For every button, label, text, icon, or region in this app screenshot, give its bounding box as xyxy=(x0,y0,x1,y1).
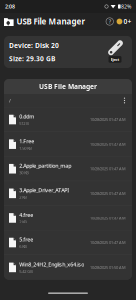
button[interactable]: 3.Apple_Driver_ATAPI xyxy=(4,181,132,206)
staticText: 4.free xyxy=(19,211,33,218)
staticText: 512 B xyxy=(19,121,29,126)
staticText: 2 KB xyxy=(19,195,27,200)
staticText: 10/28/2025 01:47 AM xyxy=(90,166,126,171)
button[interactable]: 1.Free xyxy=(4,132,132,157)
staticText: 10/28/2025 01:47 AM xyxy=(90,240,126,245)
staticText: 2:08 xyxy=(5,3,15,10)
staticText: 0.ddm xyxy=(19,113,34,120)
staticText: 2 KB xyxy=(19,219,27,224)
staticText: 2.Apple_partition_map xyxy=(19,162,71,169)
staticText: 10/28/2025 01:47 AM xyxy=(90,117,126,122)
button[interactable]: 4.free xyxy=(4,206,132,230)
staticText: 10/28/2025 01:50 AM xyxy=(90,265,126,270)
staticText: / xyxy=(9,97,11,104)
staticText: 0+ xyxy=(124,17,132,26)
staticText: 5.free xyxy=(19,236,33,243)
staticText: Eject xyxy=(110,57,119,62)
staticText: Device: Disk 20 xyxy=(9,41,59,50)
staticText: 5.42 GB xyxy=(19,269,33,274)
staticText: Size: 29.30 GB xyxy=(9,54,55,63)
staticText: 10/28/2025 01:47 AM xyxy=(90,215,126,221)
staticText: 10/28/2025 01:47 AM xyxy=(90,191,126,196)
button[interactable]: Eject xyxy=(102,41,128,63)
button[interactable]: 0.ddm xyxy=(4,107,132,132)
staticText: 1.50 KB xyxy=(19,145,32,151)
staticText: 82% xyxy=(121,3,131,10)
staticText: 1.Free xyxy=(19,138,34,145)
staticText: USB File Manager xyxy=(39,82,97,91)
button[interactable]: Coins xyxy=(115,14,133,28)
button[interactable]: 2.Apple_partition_map xyxy=(4,157,132,181)
staticText: 3.Apple_Driver_ATAPI xyxy=(19,187,69,194)
staticText: 30 KB xyxy=(19,170,29,175)
staticText: ? xyxy=(109,18,111,25)
button[interactable]: More options xyxy=(119,94,130,107)
button[interactable]: 5.free xyxy=(4,230,132,255)
button[interactable]: Help xyxy=(104,14,115,28)
staticText: USB File Manager xyxy=(17,16,86,27)
button[interactable]: Win8_24H2_English_x64.iso xyxy=(4,255,132,280)
staticText: Win8_24H2_English_x64.iso xyxy=(19,261,84,268)
staticText: 6 KB xyxy=(19,244,27,249)
staticText: 10/28/2025 01:47 AM xyxy=(90,141,126,147)
